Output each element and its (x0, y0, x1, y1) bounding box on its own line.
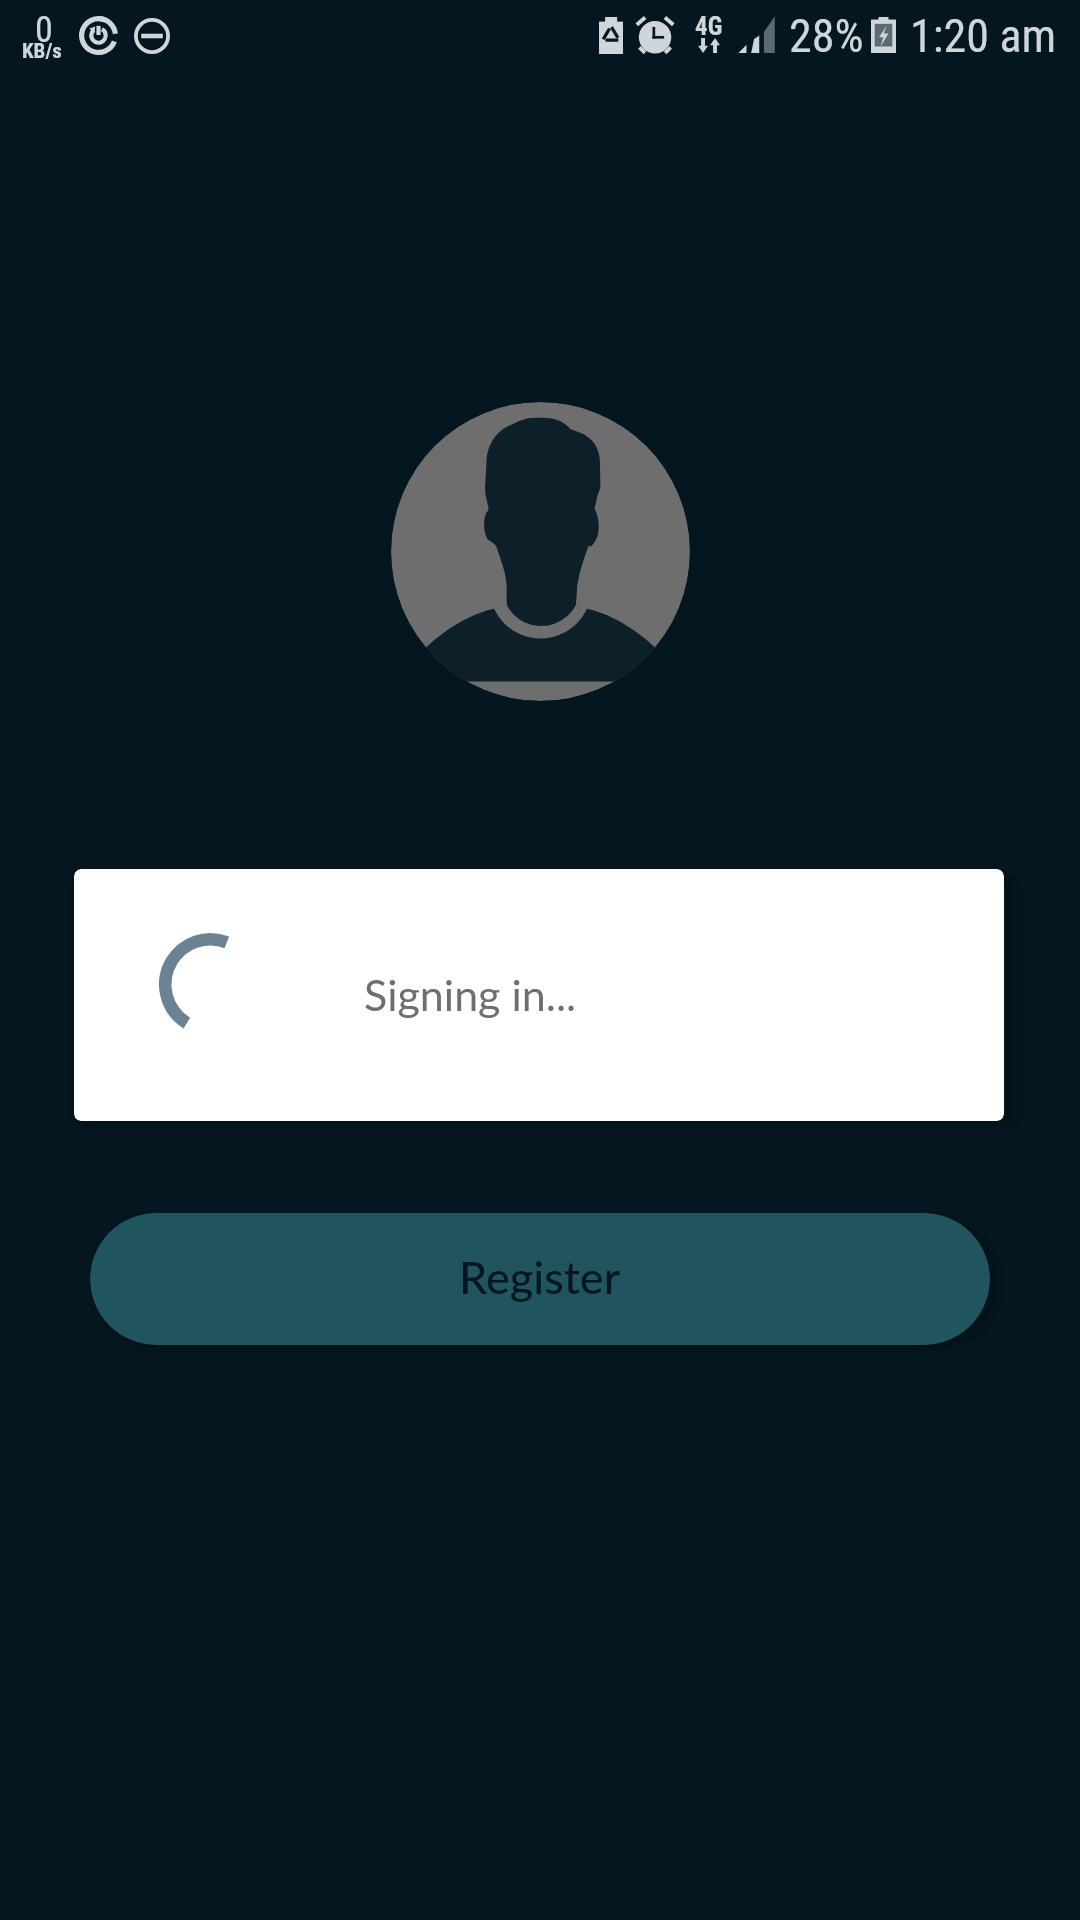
staticText: KB/s (22, 39, 62, 64)
staticText: Register (459, 1250, 621, 1304)
staticText: 1:20 am (910, 9, 1057, 63)
staticText: Signing in... (364, 969, 577, 1021)
staticText: 4G (695, 12, 723, 41)
other: Power saving (79, 16, 118, 55)
other: Do not disturb (134, 18, 170, 54)
button[interactable]: Profile picture (391, 402, 690, 701)
staticText: 0 (35, 9, 53, 51)
staticText: 28% (789, 9, 864, 63)
button[interactable]: Register (90, 1213, 990, 1345)
